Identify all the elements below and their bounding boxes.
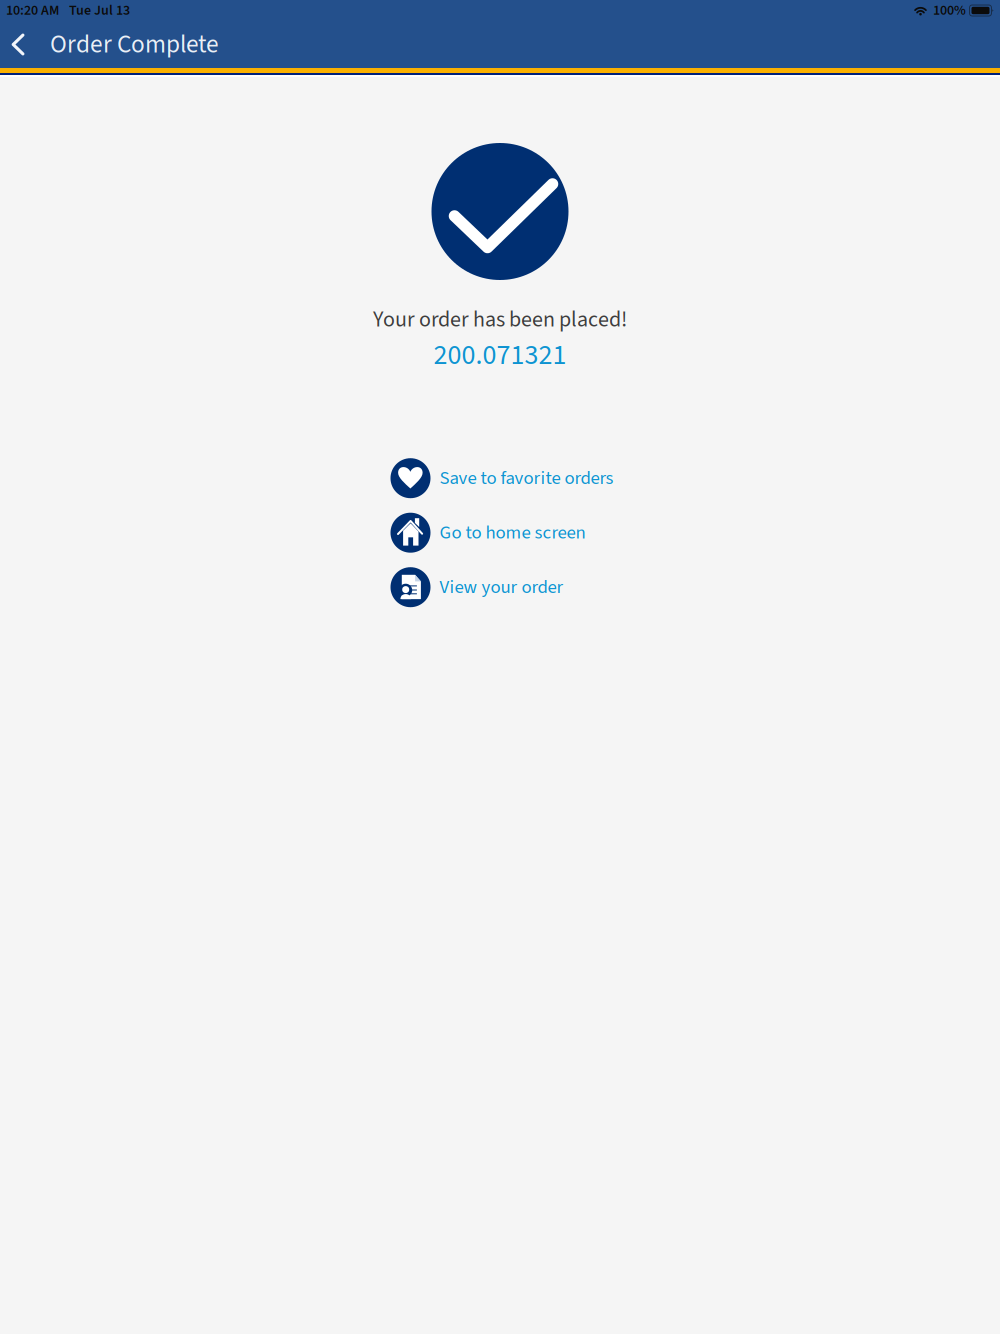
staticText: View your order: [439, 574, 563, 601]
staticText: 200.071321: [433, 335, 566, 375]
staticText: Your order has been placed!: [373, 304, 627, 335]
staticText: Save to favorite orders: [439, 465, 613, 492]
button[interactable]: Save to favorite orders: [390, 458, 618, 498]
button[interactable]: View your order: [390, 567, 618, 607]
staticText: Order Complete: [50, 26, 219, 63]
button[interactable]: Back: [0, 21, 36, 68]
staticText: 10:20 AM: [6, 0, 59, 20]
staticText: Tue Jul 13: [69, 0, 130, 20]
staticText: 100%: [933, 0, 966, 20]
button[interactable]: Go to home screen: [390, 513, 618, 553]
staticText: Go to home screen: [439, 519, 585, 546]
